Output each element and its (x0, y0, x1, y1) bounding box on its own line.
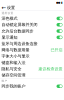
staticText: ▮ (60, 1, 62, 4)
staticText: 账户 (1, 79, 7, 82)
staticText: 键盘和输入法 (1, 60, 25, 65)
staticText: 已开启 (50, 47, 62, 52)
button[interactable]: 自动锁定屏幕并关闭 (0, 22, 64, 28)
button[interactable]: 储存空间管理 (0, 72, 64, 78)
button[interactable]: 深色模式 (0, 15, 64, 22)
staticText: 允许后台数据同步 (1, 29, 33, 33)
staticText: 网络与数据用量 (1, 47, 29, 52)
staticText: 隐私与安全 (1, 66, 21, 71)
button[interactable]: 网络与数据用量 (0, 47, 64, 53)
button[interactable]: 隐私与安全 (0, 66, 64, 72)
staticText: 设置 (7, 5, 15, 10)
staticText: 字体大小与显示 (1, 54, 29, 59)
button[interactable]: Back (1, 5, 5, 11)
button[interactable]: 显示通知 (0, 34, 64, 40)
staticText: 建议检查设置 (38, 66, 62, 71)
button[interactable]: 键盘和输入法 (0, 59, 64, 66)
staticText: ← (1, 5, 5, 11)
staticText: 深色模式 (1, 16, 17, 21)
staticText: ●● (56, 1, 60, 4)
staticText: 储存空间管理 (1, 73, 25, 78)
staticText: 蓝牙与周边设备连接 (1, 41, 37, 46)
staticText: 通用设置 (1, 11, 13, 15)
button[interactable]: 字体大小与显示 (0, 53, 64, 59)
staticText: 自动锁定屏幕并关闭 (1, 22, 37, 27)
staticText: 显示通知 (1, 35, 17, 40)
button[interactable]: 蓝牙与周边设备连接 (0, 40, 64, 47)
staticText: 同步我的账户 (1, 84, 25, 89)
button[interactable]: 同步我的账户 (0, 83, 64, 89)
button[interactable]: 允许后台数据同步 (0, 28, 64, 34)
